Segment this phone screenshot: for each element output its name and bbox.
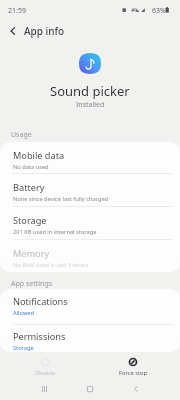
button[interactable]: Force stop — [88, 352, 178, 378]
staticText: No data used — [13, 163, 49, 171]
button[interactable]: Back — [2, 20, 24, 42]
staticText: Memory — [13, 247, 50, 260]
staticText: 201 KB used in internal storage — [13, 228, 97, 236]
staticText: Storage — [13, 344, 34, 352]
button[interactable]: Recent apps — [27, 378, 63, 400]
staticText: Force stop — [119, 369, 147, 377]
staticText: Permissions — [13, 330, 66, 343]
button[interactable]: Battery — [0, 174, 180, 206]
staticText: Mobile data — [13, 149, 65, 162]
staticText: Allowed — [13, 309, 35, 317]
staticText: 63% — [152, 6, 166, 16]
staticText: No RAM used in last 3 hours — [13, 261, 89, 269]
button[interactable]: Permissions — [0, 325, 180, 352]
staticText: Disable — [35, 369, 55, 377]
button[interactable]: Back — [118, 378, 154, 400]
button[interactable]: Storage — [0, 207, 180, 239]
staticText: Storage — [13, 214, 47, 227]
staticText: App info — [24, 24, 65, 38]
button[interactable]: Notifications — [0, 289, 180, 324]
staticText: Sound picker — [50, 82, 130, 100]
button[interactable]: Mobile data — [0, 142, 180, 173]
staticText: Usage — [11, 130, 32, 140]
button[interactable]: Disable — [0, 352, 90, 378]
staticText: Battery — [13, 181, 45, 194]
staticText: Notifications — [13, 295, 68, 308]
staticText: None since device last fully charged — [13, 195, 109, 203]
button[interactable]: Home — [72, 378, 108, 400]
staticText: 21:59 — [8, 6, 26, 16]
button[interactable]: Memory — [0, 240, 180, 272]
staticText: App settings — [11, 279, 53, 289]
staticText: Installed — [76, 100, 105, 110]
